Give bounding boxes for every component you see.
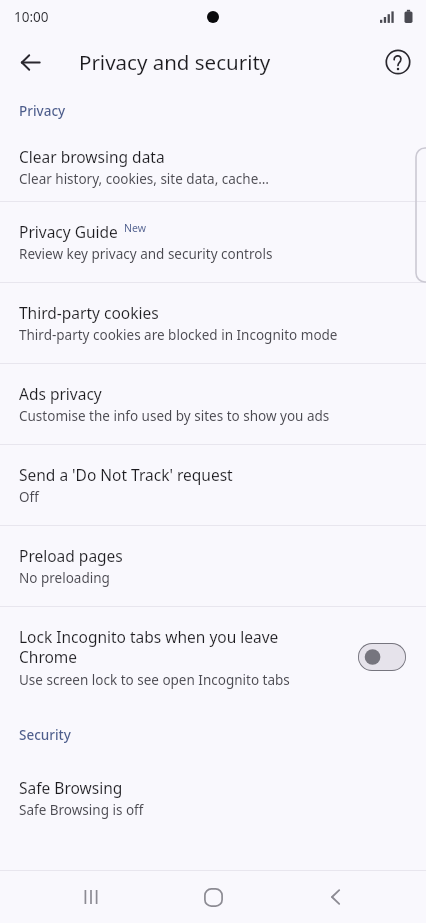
staticText: No preloading [19,569,110,587]
staticText: Safe Browsing [19,777,123,798]
staticText: New [124,221,146,235]
staticText: Third-party cookies [19,302,159,323]
staticText: Security [19,726,71,744]
staticText: Third-party cookies are blocked in Incog… [19,326,338,344]
button[interactable]: Third-party cookies [0,283,426,363]
staticText: Privacy Guide [19,221,118,242]
button[interactable]: Back [9,41,51,83]
button[interactable]: Lock Incognito tabs when you leave Chrom… [0,607,426,707]
button[interactable]: Help [377,41,419,83]
staticText: Use screen lock to see open Incognito ta… [19,671,290,689]
staticText: Privacy [19,102,66,120]
button[interactable]: Back [304,871,368,923]
button[interactable]: Home [181,871,245,923]
button[interactable]: Safe Browsing [0,763,426,833]
staticText: Customise the info used by sites to show… [19,407,330,425]
staticText: Clear browsing data [19,146,165,167]
staticText: Send a 'Do Not Track' request [19,464,233,485]
button[interactable]: Send a 'Do Not Track' request [0,445,426,525]
button[interactable]: Lock Incognito tabs toggle, off [358,643,406,671]
button[interactable]: Privacy Guide [0,202,426,282]
button[interactable]: Ads privacy [0,364,426,444]
button[interactable]: Preload pages [0,526,426,606]
staticText: Preload pages [19,545,123,566]
staticText: Review key privacy and security controls [19,245,273,263]
button[interactable]: Recent apps [59,871,123,923]
staticText: Clear history, cookies, site data, cache… [19,170,269,188]
staticText: Lock Incognito tabs when you leave Chrom… [19,626,309,668]
staticText: Privacy and security [79,48,271,76]
button[interactable]: Clear browsing data [0,132,426,201]
staticText: Safe Browsing is off [19,801,144,819]
staticText: Ads privacy [19,383,102,404]
staticText: 10:00 [14,8,49,26]
staticText: Off [19,488,39,506]
